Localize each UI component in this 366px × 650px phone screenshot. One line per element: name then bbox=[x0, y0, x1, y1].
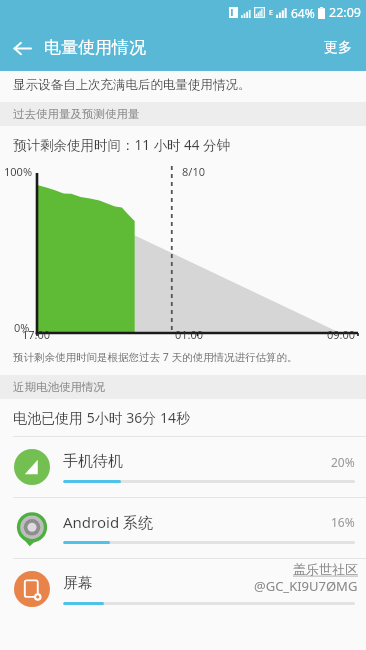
staticText: 更多 bbox=[324, 39, 352, 57]
staticText: @GC_KI9U7ØMG bbox=[254, 577, 358, 595]
staticText: 17:00 bbox=[22, 327, 51, 342]
staticText: 16% bbox=[331, 514, 355, 530]
staticText: 电池已使用 5小时 36分 14秒 bbox=[13, 408, 190, 427]
staticText: 手机待机 bbox=[63, 452, 331, 471]
staticText: 近期电池使用情况 bbox=[13, 380, 105, 394]
button[interactable]: 更多 bbox=[310, 29, 366, 67]
staticText: 显示设备自上次充满电后的电量使用情况。 bbox=[13, 77, 251, 93]
button[interactable]: Android 系统 bbox=[0, 498, 366, 558]
button[interactable]: 屏幕 bbox=[0, 559, 366, 619]
staticText: E bbox=[269, 8, 273, 18]
button[interactable]: 手机待机 bbox=[0, 437, 366, 497]
staticText: 预计剩余使用时间：11 小时 44 分钟 bbox=[13, 136, 230, 154]
staticText: 64% bbox=[291, 5, 315, 21]
staticText: Android 系统 bbox=[63, 512, 331, 532]
staticText: 过去使用量及预测使用量 bbox=[13, 107, 140, 121]
staticText: 0% bbox=[14, 320, 30, 335]
staticText: 屏幕 bbox=[63, 574, 355, 593]
staticText: 22:09 bbox=[329, 4, 361, 21]
staticText: 20% bbox=[331, 454, 355, 470]
staticText: 100% bbox=[4, 164, 33, 179]
staticText: 预计剩余使用时间是根据您过去 7 天的使用情况进行估算的。 bbox=[13, 350, 298, 364]
button[interactable]: Back bbox=[0, 26, 44, 70]
staticText: 09:00 bbox=[327, 327, 356, 342]
staticText: 电量使用情况 bbox=[44, 37, 146, 58]
staticText: 8/10 bbox=[182, 164, 205, 179]
staticText: 01:00 bbox=[175, 327, 204, 342]
staticText: 盖乐世社区 bbox=[293, 561, 358, 577]
